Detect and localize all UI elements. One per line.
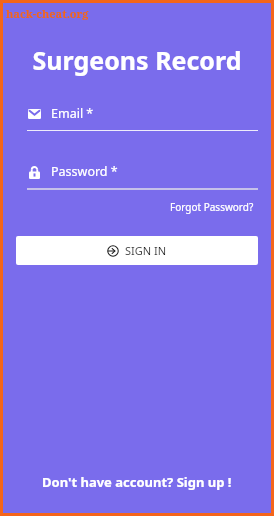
other: Password bbox=[29, 166, 40, 179]
staticText: Password * bbox=[51, 163, 118, 180]
staticText: SIGN IN bbox=[125, 243, 167, 258]
staticText: Don't have account? Sign up ! bbox=[42, 473, 232, 491]
button[interactable]: Password bbox=[3, 163, 271, 190]
staticText: Surgeons Record bbox=[3, 43, 271, 77]
other: Email bbox=[28, 109, 41, 119]
button[interactable]: Email bbox=[3, 105, 271, 131]
staticText: hack-cheat.org bbox=[6, 6, 89, 21]
staticText: Email * bbox=[51, 105, 94, 122]
button[interactable]: SIGN IN bbox=[16, 236, 258, 265]
staticText: Forgot Password? bbox=[170, 200, 254, 214]
button[interactable]: Forgot Password? bbox=[166, 196, 258, 218]
button[interactable]: Don't have account? Sign up ! bbox=[3, 467, 271, 497]
